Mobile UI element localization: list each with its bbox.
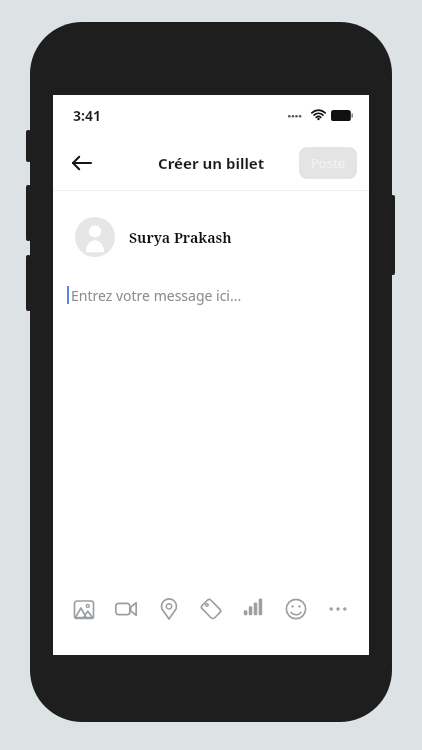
button[interactable]: Add emoji xyxy=(277,590,315,628)
staticText: Entrez votre message ici... xyxy=(71,286,242,305)
button[interactable]: Add video xyxy=(107,590,145,628)
staticText: Surya Prakash xyxy=(129,228,232,247)
button[interactable]: More options xyxy=(319,590,357,628)
button[interactable]: Add tag xyxy=(192,590,230,628)
button[interactable]: Add location xyxy=(150,590,188,628)
button[interactable]: Back xyxy=(61,142,103,184)
button[interactable]: Add poll xyxy=(234,590,272,628)
button[interactable]: Poste xyxy=(299,147,357,179)
button[interactable]: Profile picture xyxy=(75,217,115,257)
staticText: 3:41 xyxy=(73,106,101,125)
button[interactable]: Add photo xyxy=(65,590,103,628)
button[interactable]: Entrez votre message ici... xyxy=(53,283,369,307)
staticText: Créer un billet xyxy=(158,153,265,173)
staticText: Poste xyxy=(311,154,345,172)
